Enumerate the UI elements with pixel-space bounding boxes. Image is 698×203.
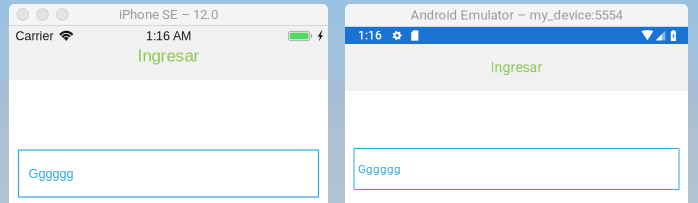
button[interactable]: Ingresar <box>9 46 328 65</box>
button[interactable]: Ingresar <box>345 44 688 91</box>
staticText: Carrier <box>15 29 53 43</box>
button[interactable]: Close window <box>17 9 28 20</box>
button[interactable]: Gggggg <box>18 150 318 197</box>
staticText: Gggggg <box>358 162 401 176</box>
staticText: Ingresar <box>490 59 542 76</box>
button[interactable]: Minimize window <box>37 9 48 20</box>
staticText: Android Emulator – my_device:5554 <box>410 7 622 23</box>
staticText: iPhone SE – 12.0 <box>119 7 218 22</box>
staticText: Gggggg <box>28 166 73 181</box>
staticText: Ingresar <box>137 46 199 65</box>
staticText: 1:16 AM <box>146 29 191 43</box>
button[interactable]: Zoom window <box>57 9 68 20</box>
button[interactable]: Gggggg <box>354 148 679 189</box>
staticText: 1:16 <box>358 28 382 43</box>
